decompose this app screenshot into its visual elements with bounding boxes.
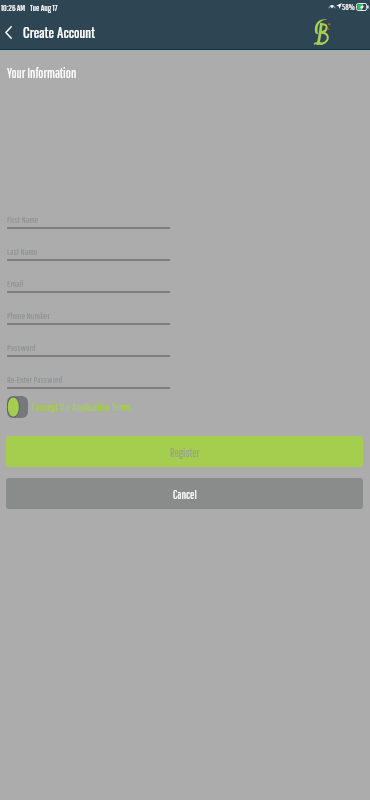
- staticText: Email: [7, 278, 24, 289]
- button[interactable]: Email: [0, 271, 370, 292]
- staticText: Password: [7, 342, 36, 353]
- button[interactable]: First Name: [0, 207, 370, 228]
- button[interactable]: Last Name: [0, 239, 370, 260]
- button[interactable]: Cancel: [6, 478, 363, 509]
- staticText: Your Information: [7, 65, 77, 81]
- staticText: Cancel: [173, 488, 197, 501]
- button[interactable]: Password: [0, 335, 370, 356]
- button[interactable]: Re-Enter Password: [0, 367, 370, 388]
- staticText: First Name: [7, 214, 39, 225]
- button[interactable]: I accept the Application Terms: [0, 394, 370, 420]
- staticText: 58%: [342, 2, 355, 12]
- button[interactable]: Register: [6, 436, 363, 467]
- staticText: Create Account: [23, 22, 95, 41]
- staticText: 10:26 AM: [1, 2, 26, 12]
- staticText: Phone Number: [7, 310, 50, 321]
- staticText: I accept the Application Terms: [32, 401, 132, 413]
- staticText: Register: [170, 446, 200, 459]
- staticText: Tue Aug 17: [30, 2, 58, 12]
- staticText: Last Name: [7, 246, 38, 257]
- staticText: Re-Enter Password: [7, 374, 63, 385]
- button[interactable]: Back: [0, 18, 18, 46]
- button[interactable]: Phone Number: [0, 303, 370, 324]
